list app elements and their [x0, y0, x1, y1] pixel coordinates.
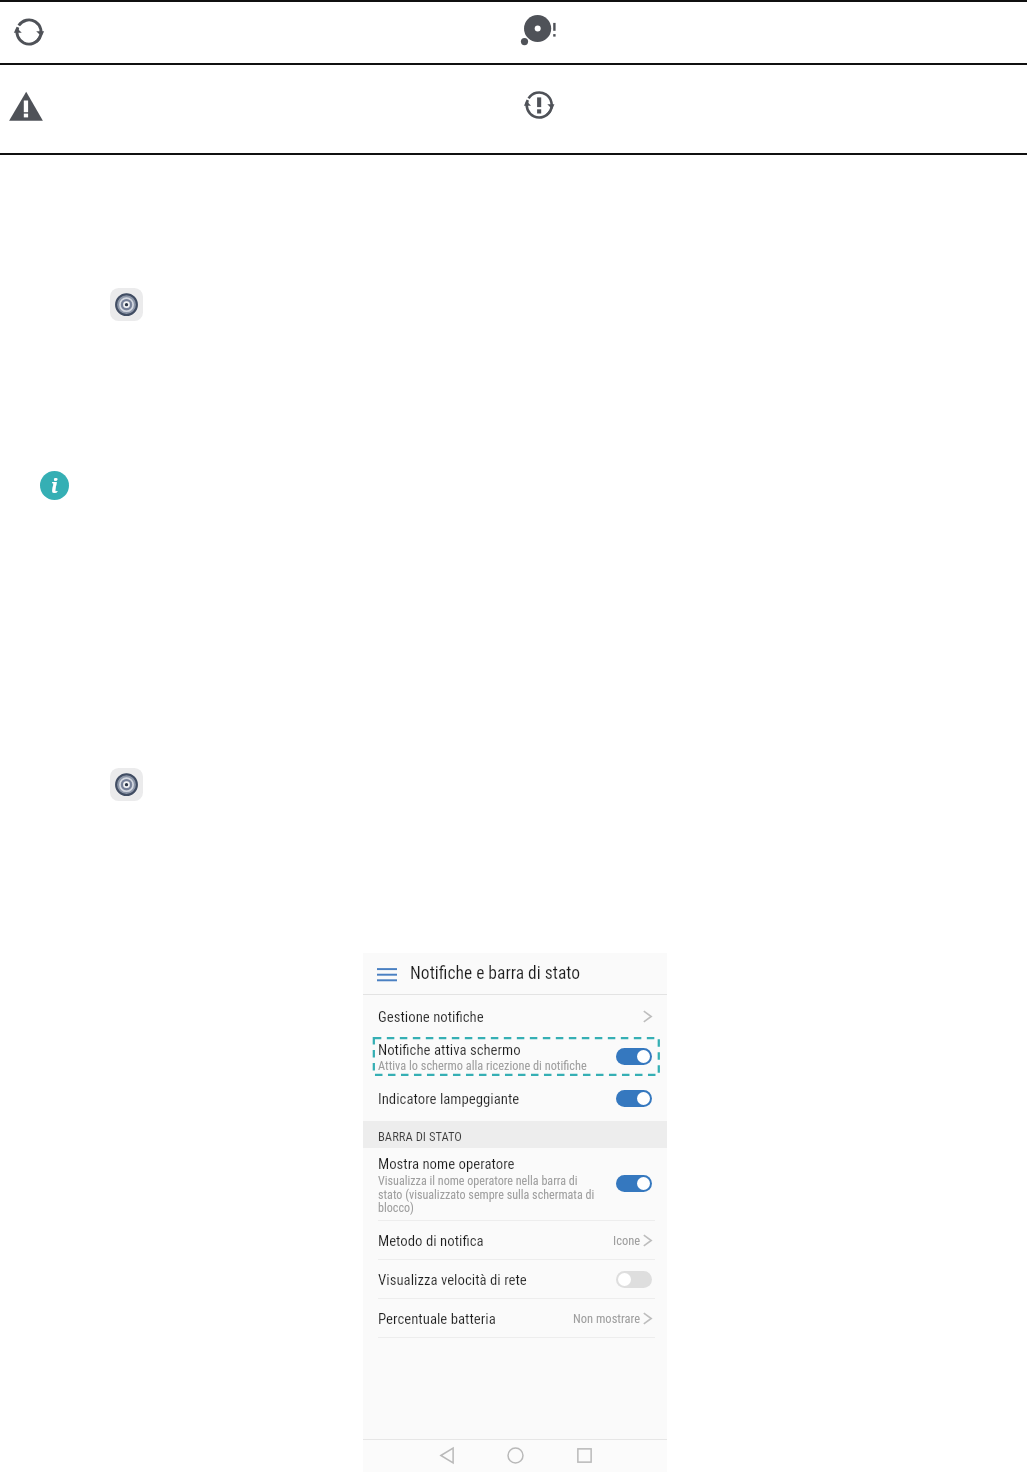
staticText: BARRA DI STATO [378, 1129, 462, 1144]
button[interactable]: Percentuale batteria [363, 1299, 667, 1337]
button[interactable]: Menu [363, 953, 410, 994]
button[interactable]: Gestione notifiche [363, 995, 667, 1037]
button[interactable]: On [616, 1048, 652, 1065]
staticText: Visualizza il nome operatore nella barra… [378, 1174, 604, 1215]
button[interactable]: Metodo di notifica [363, 1221, 667, 1259]
staticText: Non mostrare [573, 1311, 641, 1326]
button[interactable]: Settings [110, 768, 143, 801]
staticText: Indicatore lampeggiante [378, 1090, 616, 1107]
staticText: Visualizza velocità di rete [378, 1271, 616, 1288]
staticText: i [51, 473, 58, 499]
button[interactable]: Mostra nome operatore [363, 1148, 667, 1220]
button[interactable]: Recents [576, 1447, 593, 1464]
button[interactable]: Notifiche attiva schermo [363, 1037, 667, 1076]
button[interactable]: Settings [110, 288, 143, 321]
button[interactable]: Visualizza velocità di rete [363, 1260, 667, 1298]
button[interactable]: Off [616, 1271, 652, 1288]
staticText: Mostra nome operatore [378, 1155, 515, 1172]
button[interactable]: Home [507, 1447, 524, 1464]
button[interactable]: Indicatore lampeggiante [363, 1076, 667, 1121]
button[interactable]: Back [439, 1447, 456, 1464]
other: Storage alert [510, 9, 558, 57]
other: Info [40, 471, 69, 500]
staticText: Notifiche e barra di stato [410, 963, 581, 984]
staticText: Icone [613, 1233, 641, 1248]
staticText: Percentuale batteria [378, 1310, 573, 1327]
staticText: Attiva lo schermo alla ricezione di noti… [378, 1059, 587, 1073]
other: Sync [12, 15, 46, 49]
staticText: Gestione notifiche [378, 1008, 643, 1025]
other: Warning [5, 86, 53, 134]
button[interactable]: On [616, 1090, 652, 1107]
staticText: Notifiche attiva schermo [378, 1041, 521, 1058]
button[interactable]: On [616, 1175, 652, 1192]
other: Sync problem [515, 81, 563, 129]
staticText: Metodo di notifica [378, 1232, 613, 1249]
